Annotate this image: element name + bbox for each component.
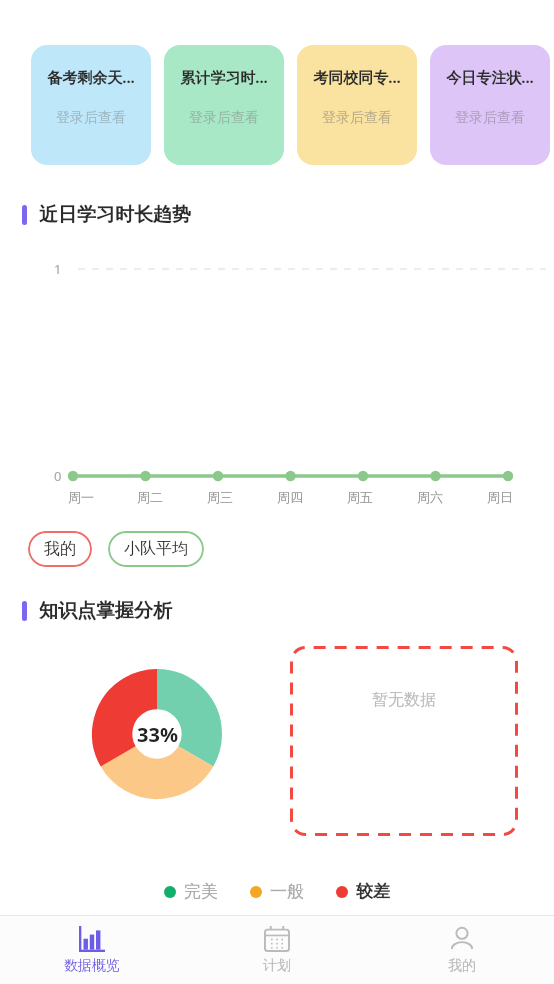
staticText: 较差	[356, 881, 390, 902]
staticText: 备考剩余天...	[47, 67, 135, 87]
staticText: 周二	[137, 489, 163, 505]
staticText: 33%	[137, 721, 178, 748]
staticText: 登录后查看	[189, 109, 259, 127]
staticText: 我的	[448, 957, 476, 975]
staticText: 近日学习时长趋势	[39, 203, 191, 227]
button[interactable]: 我的	[28, 531, 92, 567]
staticText: 今日专注状...	[446, 67, 534, 87]
button[interactable]: 备考剩余天...	[31, 45, 151, 165]
staticText: 周一	[68, 489, 94, 505]
staticText: 周三	[207, 489, 233, 505]
staticText: 我的	[44, 539, 76, 559]
staticText: 考同校同专...	[313, 67, 401, 87]
button[interactable]: 累计学习时...	[164, 45, 284, 165]
button[interactable]: 今日专注状...	[430, 45, 550, 165]
staticText: 登录后查看	[56, 109, 126, 127]
staticText: 暂无数据	[372, 690, 436, 710]
staticText: 周六	[417, 489, 443, 505]
button[interactable]: 我的	[369, 916, 554, 984]
button[interactable]: 计划	[184, 916, 369, 984]
staticText: 数据概览	[64, 957, 120, 975]
staticText: 登录后查看	[455, 109, 525, 127]
staticText: 小队平均	[124, 539, 188, 559]
button[interactable]: 小队平均	[108, 531, 204, 567]
staticText: 周日	[487, 489, 513, 505]
button[interactable]: 数据概览	[0, 916, 184, 984]
staticText: 累计学习时...	[180, 67, 268, 87]
staticText: 计划	[263, 957, 291, 975]
staticText: 0	[54, 467, 62, 485]
staticText: 一般	[270, 881, 304, 902]
staticText: 周四	[277, 489, 303, 505]
staticText: 周五	[347, 489, 373, 505]
staticText: 1	[54, 260, 62, 278]
staticText: 完美	[184, 881, 218, 902]
staticText: 知识点掌握分析	[39, 599, 172, 623]
staticText: 登录后查看	[322, 109, 392, 127]
button[interactable]: 考同校同专...	[297, 45, 417, 165]
